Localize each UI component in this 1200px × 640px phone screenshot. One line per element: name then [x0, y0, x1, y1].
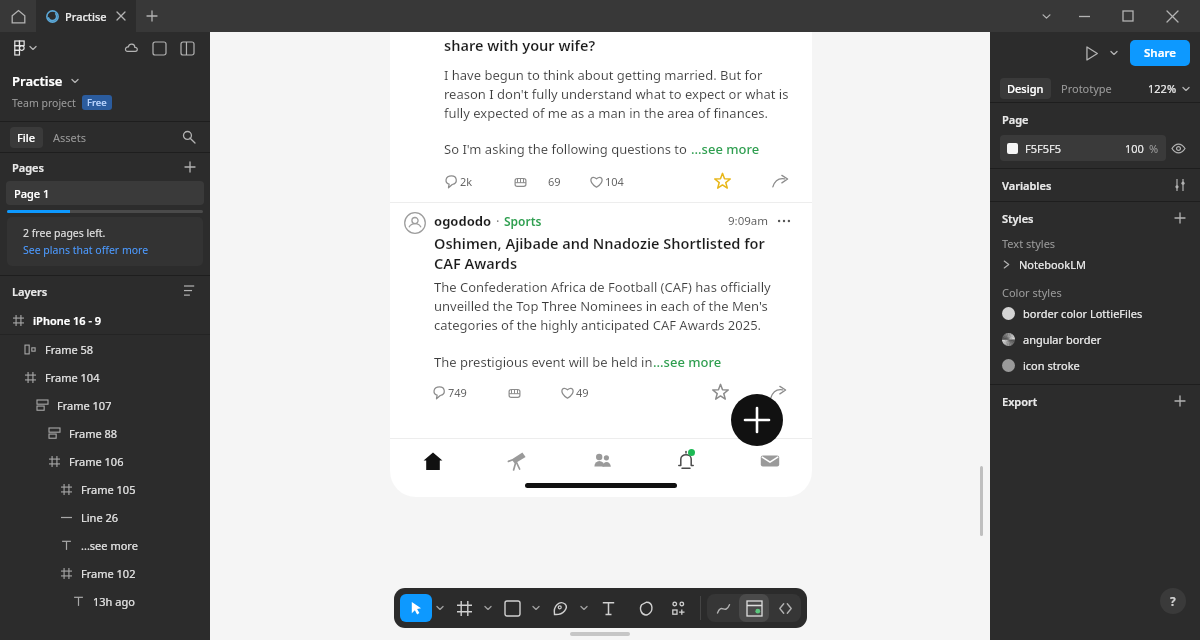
button[interactable]: Toggle panel — [176, 37, 198, 59]
staticText: angular border — [1023, 332, 1102, 347]
button[interactable]: Search — [178, 126, 200, 148]
button[interactable]: Accessibility — [148, 37, 170, 59]
button[interactable]: ...see more — [691, 140, 760, 158]
staticText: I have begun to think about getting marr… — [444, 66, 792, 122]
button[interactable]: Boost — [513, 174, 561, 189]
button[interactable]: Frame tool — [448, 594, 480, 622]
button[interactable]: ...see more — [0, 531, 210, 559]
button[interactable]: Add page — [180, 157, 200, 177]
button[interactable]: Tool options — [480, 594, 496, 622]
button[interactable]: Frame 106 — [0, 447, 210, 475]
button[interactable]: Notifications — [644, 439, 728, 483]
button[interactable]: Page 1 — [6, 181, 204, 205]
button[interactable]: Communities — [560, 439, 644, 483]
button[interactable]: Code — [769, 594, 801, 622]
button[interactable]: Home — [0, 0, 36, 32]
button[interactable]: Variables settings — [1170, 175, 1190, 195]
button[interactable]: Assets — [53, 130, 87, 145]
button[interactable]: F5F5F5 — [1000, 135, 1166, 161]
button[interactable]: Add Styles — [1170, 208, 1190, 228]
staticText: 9:09am — [728, 213, 769, 229]
button[interactable]: More options — [776, 213, 792, 229]
button[interactable]: Like — [560, 385, 589, 400]
button[interactable]: Like — [589, 174, 624, 189]
button[interactable]: Toggle visibility — [1166, 136, 1190, 160]
button[interactable]: Close tab — [112, 7, 130, 25]
button[interactable]: Free — [87, 96, 107, 109]
button[interactable]: Practise — [12, 72, 79, 90]
button[interactable]: angular border — [990, 326, 1200, 352]
button[interactable]: Frame 105 — [0, 475, 210, 503]
staticText: NotebookLM — [1019, 257, 1086, 272]
button[interactable]: ...see more — [653, 353, 722, 371]
button[interactable]: Text tool — [592, 594, 624, 622]
button[interactable]: Explore — [475, 439, 560, 483]
button[interactable]: Share — [1130, 40, 1190, 66]
button[interactable]: Boost — [507, 385, 522, 400]
button[interactable]: icon stroke — [990, 352, 1200, 378]
staticText: Layers — [12, 284, 48, 299]
button[interactable]: Design — [1000, 78, 1051, 99]
staticText: Frame 104 — [45, 370, 100, 385]
button[interactable]: Maximize — [1106, 0, 1150, 32]
button[interactable]: Frame 107 — [0, 391, 210, 419]
button[interactable]: Move tool — [400, 594, 432, 622]
button[interactable]: Share — [768, 169, 792, 193]
button[interactable]: File — [17, 130, 36, 145]
button[interactable]: Tab list — [1030, 0, 1062, 32]
button[interactable]: Line 26 — [0, 503, 210, 531]
button[interactable]: ogododo — [434, 212, 492, 230]
button[interactable]: Minimize — [1062, 0, 1106, 32]
button[interactable]: NotebookLM — [990, 251, 1200, 277]
staticText: The prestigious event will be held in — [434, 353, 653, 371]
button[interactable]: Help — [1160, 588, 1186, 614]
button[interactable]: Tool options — [432, 594, 448, 622]
button[interactable]: Tool options — [576, 594, 592, 622]
button[interactable]: 122% — [1148, 81, 1190, 96]
button[interactable]: Messages — [728, 439, 812, 483]
button[interactable]: Dev mode — [739, 594, 769, 622]
button[interactable]: Figma menu — [12, 41, 37, 55]
staticText: F5F5F5 — [1025, 141, 1062, 156]
button[interactable]: Shape tool — [496, 594, 528, 622]
staticText: Variables — [1002, 178, 1052, 193]
button[interactable]: Comment — [630, 594, 662, 622]
staticText: Free — [87, 96, 107, 109]
button[interactable]: Pen tool — [544, 594, 576, 622]
button[interactable]: 13h ago — [0, 587, 210, 615]
button[interactable]: Sports — [504, 213, 542, 229]
button[interactable]: Prototype — [1057, 78, 1116, 99]
button[interactable]: Frame 58 — [0, 335, 210, 363]
button[interactable]: Profile — [404, 212, 426, 234]
button[interactable]: Practise — [36, 0, 136, 32]
button[interactable]: 2 free pages left. — [7, 217, 203, 266]
staticText: border color LottieFiles — [1023, 306, 1143, 321]
button[interactable]: Layer options — [180, 281, 200, 301]
button[interactable]: Share — [766, 380, 790, 404]
button[interactable]: Present — [1078, 40, 1104, 66]
button[interactable]: Frame 88 — [0, 419, 210, 447]
button[interactable]: Add Export — [1170, 391, 1190, 411]
button[interactable]: Close window — [1150, 0, 1194, 32]
button[interactable]: Plugins — [662, 594, 694, 622]
button[interactable]: Bookmark — [710, 169, 734, 193]
button[interactable]: Comments — [444, 174, 473, 189]
button[interactable]: Cloud status — [120, 37, 142, 59]
staticText: 2k — [460, 174, 473, 189]
staticText: iPhone 16 - 9 — [33, 313, 102, 328]
button[interactable]: Frame 104 — [0, 363, 210, 391]
button[interactable]: Present options — [1104, 43, 1124, 63]
button[interactable]: Comments — [432, 385, 467, 400]
button[interactable]: Create post — [731, 394, 783, 446]
button[interactable]: Actions — [707, 594, 739, 622]
button[interactable]: border color LottieFiles — [990, 300, 1200, 326]
button[interactable]: Bookmark — [708, 380, 732, 404]
button[interactable]: Tool options — [528, 594, 544, 622]
staticText: The Confederation Africa de Football (CA… — [434, 278, 792, 334]
button[interactable]: Home — [390, 439, 475, 483]
button[interactable]: New tab — [136, 0, 168, 32]
staticText: 100 — [1125, 141, 1144, 156]
button[interactable]: Frame 102 — [0, 559, 210, 587]
staticText: Practise — [12, 72, 63, 90]
button[interactable]: iPhone 16 - 9 — [0, 306, 210, 334]
